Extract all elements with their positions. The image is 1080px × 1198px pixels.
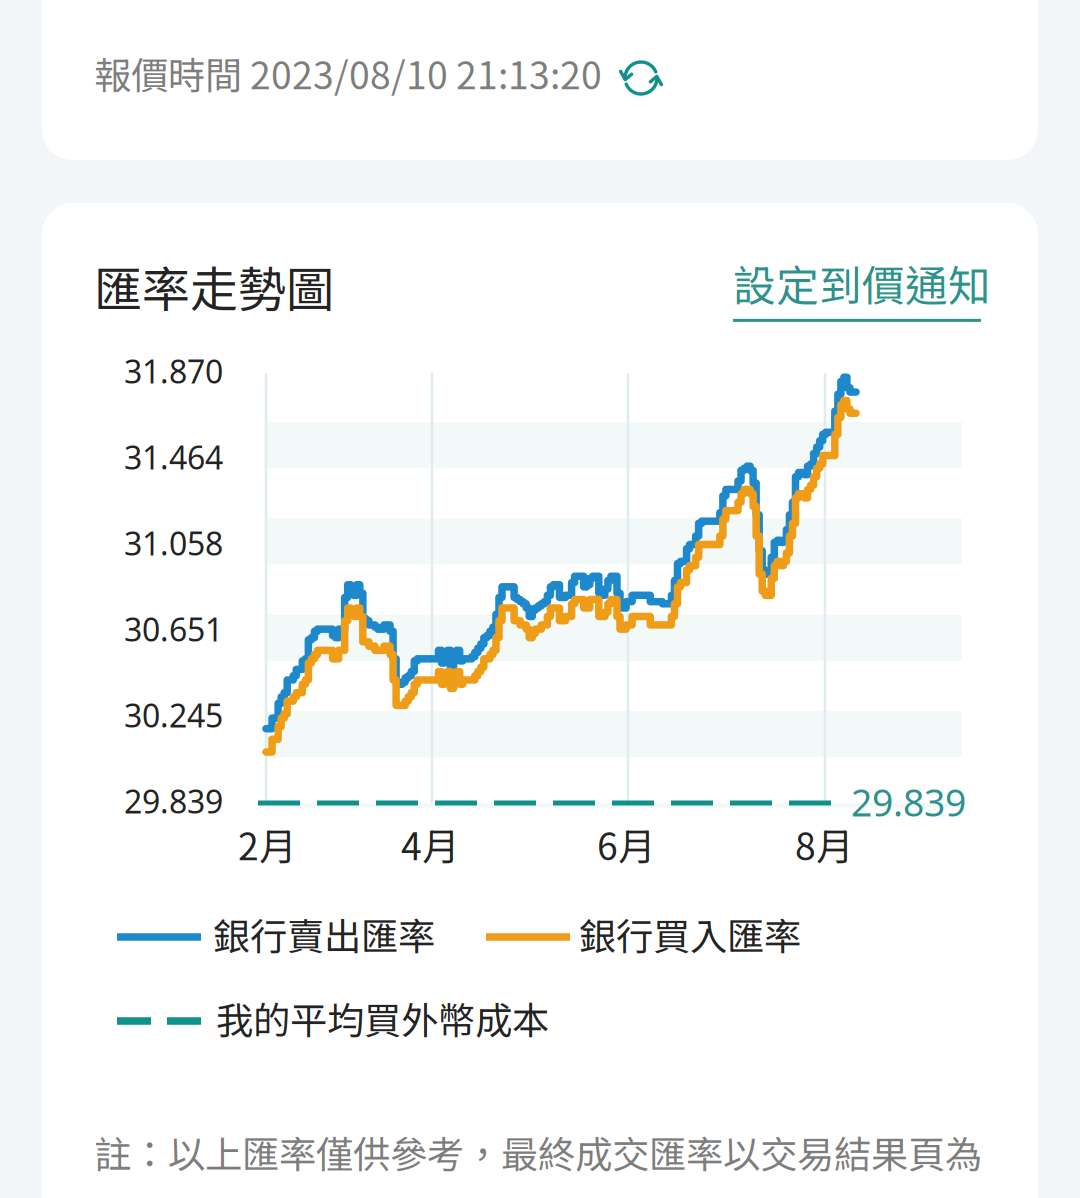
staticText: 31.870 xyxy=(124,349,223,393)
staticText: 31.058 xyxy=(124,521,223,565)
staticText: 30.651 xyxy=(124,607,223,651)
staticText: 銀行買入匯率 xyxy=(579,907,801,961)
staticText: 銀行賣出匯率 xyxy=(213,907,435,961)
staticText: 30.245 xyxy=(124,693,223,737)
staticText: 6月 xyxy=(597,817,655,871)
staticText: 31.464 xyxy=(124,435,223,479)
staticText: 報價時間 2023/08/10 21:13:20 xyxy=(94,46,602,100)
staticText: 2月 xyxy=(238,817,296,871)
button[interactable]: 設定到價通知 xyxy=(733,252,1033,322)
staticText: 設定到價通知 xyxy=(733,252,991,314)
staticText: 註：以上匯率僅供參考，最終成交匯率以交易結果頁為 xyxy=(94,1125,982,1179)
button[interactable]: Refresh quote xyxy=(620,57,662,99)
staticText: 4月 xyxy=(401,817,459,871)
staticText: 匯率走勢圖 xyxy=(94,251,334,321)
staticText: 我的平均買外幣成本 xyxy=(216,991,549,1045)
staticText: 8月 xyxy=(795,817,853,871)
staticText: 29.839 xyxy=(851,777,966,827)
staticText: 29.839 xyxy=(124,779,223,823)
